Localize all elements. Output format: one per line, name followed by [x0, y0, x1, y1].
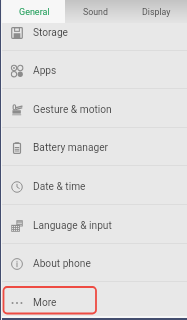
staticText: Gesture & motion	[33, 104, 112, 116]
button[interactable]: About phone	[0, 244, 187, 282]
button[interactable]: Battery manager	[0, 128, 187, 166]
staticText: Sound	[83, 7, 108, 17]
staticText: Storage	[33, 27, 69, 39]
button[interactable]: Date & time	[0, 166, 187, 205]
button[interactable]: General	[3, 0, 65, 23]
button[interactable]: Sound	[65, 0, 126, 23]
staticText: General	[19, 7, 50, 18]
staticText: About phone	[33, 258, 91, 270]
button[interactable]: Gesture & motion	[0, 89, 187, 128]
staticText: More	[33, 297, 57, 309]
staticText: Date & time	[33, 181, 86, 193]
staticText: Apps	[33, 65, 57, 77]
button[interactable]: More	[0, 282, 187, 320]
button[interactable]: Apps	[0, 51, 187, 89]
staticText: Language & input	[33, 220, 112, 232]
staticText: Display	[142, 7, 171, 17]
button[interactable]: Display	[126, 0, 187, 23]
staticText: Battery manager	[33, 142, 109, 154]
button[interactable]: Language & input	[0, 205, 187, 244]
button[interactable]: Storage	[0, 12, 187, 51]
